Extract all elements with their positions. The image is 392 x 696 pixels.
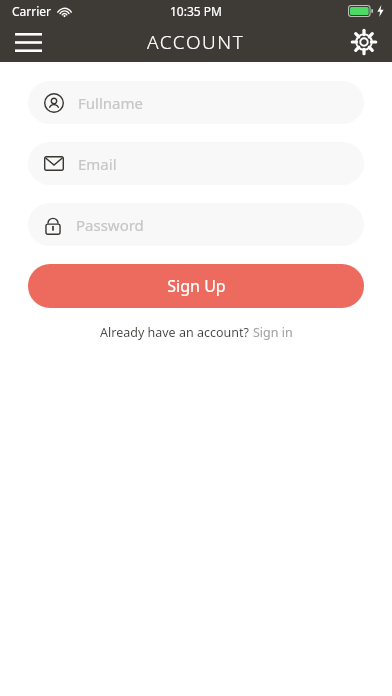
button[interactable]: Settings [342, 22, 386, 62]
staticText: ACCOUNT [147, 29, 245, 55]
button[interactable]: Email [28, 142, 364, 185]
staticText: Sign Up [167, 275, 226, 297]
staticText: Already have an account? [100, 324, 249, 341]
staticText: Email [78, 154, 117, 174]
staticText: Fullname [78, 93, 143, 113]
button[interactable]: Password [28, 203, 364, 246]
button[interactable]: Sign Up [28, 264, 364, 308]
button[interactable]: Fullname [28, 81, 364, 124]
button[interactable]: Sign in [253, 324, 293, 341]
staticText: Password [76, 215, 144, 235]
staticText: 10:35 PM [170, 3, 222, 19]
button[interactable]: Menu [6, 22, 50, 62]
staticText: Carrier [12, 3, 52, 19]
staticText: Sign in [253, 324, 293, 341]
